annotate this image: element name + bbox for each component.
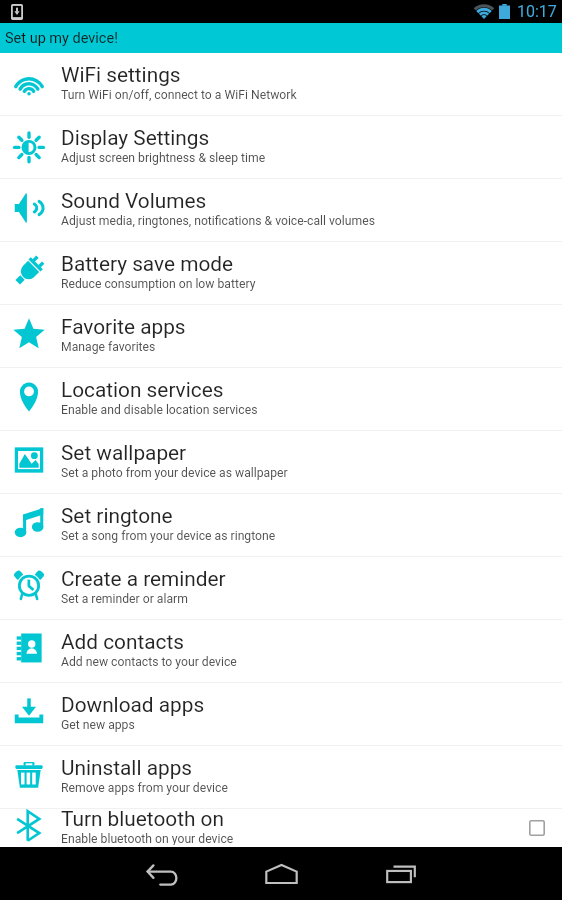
staticText: Set wallpaper	[61, 441, 187, 465]
staticText: Uninstall apps	[61, 756, 193, 780]
staticText: Set a reminder or alarm	[61, 592, 188, 606]
staticText: Set a photo from your device as wallpape…	[61, 466, 288, 480]
staticText: Adjust screen brightness & sleep time	[61, 151, 266, 165]
staticText: Turn WiFi on/off, connect to a WiFi Netw…	[61, 88, 297, 102]
staticText: Get new apps	[61, 718, 135, 732]
staticText: Turn bluetooth on	[61, 807, 224, 831]
button[interactable]: Battery save mode	[0, 242, 562, 305]
staticText: Manage favorites	[61, 340, 156, 354]
staticText: Enable and disable location services	[61, 403, 258, 417]
staticText: Location services	[61, 378, 224, 402]
button[interactable]: Display Settings	[0, 116, 562, 179]
other: Download notification	[11, 4, 23, 20]
button[interactable]: Add contacts	[0, 620, 562, 683]
staticText: Set a song from your device as ringtone	[61, 529, 276, 543]
staticText: Favorite apps	[61, 315, 186, 339]
staticText: Reduce consumption on low battery	[61, 277, 256, 291]
staticText: Enable bluetooth on your device	[61, 832, 234, 845]
staticText: Download apps	[61, 693, 205, 717]
staticText: WiFi settings	[61, 63, 181, 87]
button[interactable]: Recent apps	[341, 847, 461, 900]
staticText: Add contacts	[61, 630, 184, 654]
button[interactable]: Back	[101, 847, 221, 900]
staticText: Adjust media, ringtones, notifications &…	[61, 214, 375, 228]
button[interactable]: Set ringtone	[0, 494, 562, 557]
staticText: Add new contacts to your device	[61, 655, 237, 669]
staticText: Create a reminder	[61, 567, 226, 591]
staticText: Set ringtone	[61, 504, 173, 528]
button[interactable]: Turn bluetooth on	[0, 809, 562, 847]
button[interactable]: WiFi settings	[0, 53, 562, 116]
staticText: Set up my device!	[5, 30, 118, 47]
staticText: Sound Volumes	[61, 189, 207, 213]
button[interactable]: Create a reminder	[0, 557, 562, 620]
button[interactable]: Uninstall apps	[0, 746, 562, 809]
button[interactable]: Set wallpaper	[0, 431, 562, 494]
staticText: Remove apps from your device	[61, 781, 228, 795]
staticText: Battery save mode	[61, 252, 234, 276]
button[interactable]: Home	[221, 847, 341, 900]
button[interactable]: Set up my device!	[0, 23, 562, 53]
button[interactable]: Download apps	[0, 683, 562, 746]
button[interactable]: Location services	[0, 368, 562, 431]
button[interactable]: Sound Volumes	[0, 179, 562, 242]
staticText: Display Settings	[61, 126, 210, 150]
staticText: 10:17	[517, 2, 557, 21]
button[interactable]: Favorite apps	[0, 305, 562, 368]
